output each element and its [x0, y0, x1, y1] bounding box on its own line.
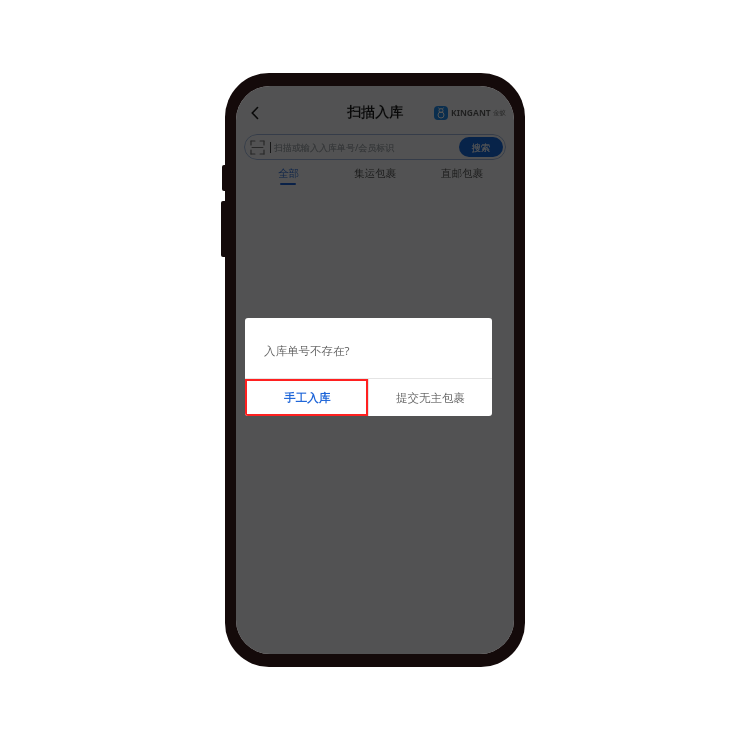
staticText: 全部	[278, 167, 299, 180]
staticText: 手工入库	[284, 391, 330, 405]
button[interactable]: 扫描或输入入库单号/会员标识	[244, 134, 506, 160]
staticText: 扫描或输入入库单号/会员标识	[274, 141, 459, 153]
button[interactable]: 集运包裹	[340, 164, 410, 190]
button[interactable]: 搜索	[459, 137, 503, 157]
staticText: 入库单号不存在?	[264, 343, 350, 359]
button[interactable]: 提交无主包裹	[369, 379, 492, 416]
staticText: 搜索	[472, 142, 490, 153]
button[interactable]: 直邮包裹	[427, 164, 497, 190]
button[interactable]: 全部	[253, 164, 323, 190]
button[interactable]: 手工入库	[245, 379, 368, 416]
staticText: KINGANT	[451, 107, 491, 119]
staticText: 集运包裹	[354, 167, 396, 180]
staticText: 提交无主包裹	[396, 391, 465, 405]
button[interactable]: Back	[240, 98, 270, 128]
staticText: 扫描入库	[347, 104, 403, 122]
staticText: 金蚁	[493, 109, 506, 117]
staticText: 直邮包裹	[441, 167, 483, 180]
button[interactable]: KINGANT	[434, 106, 506, 120]
